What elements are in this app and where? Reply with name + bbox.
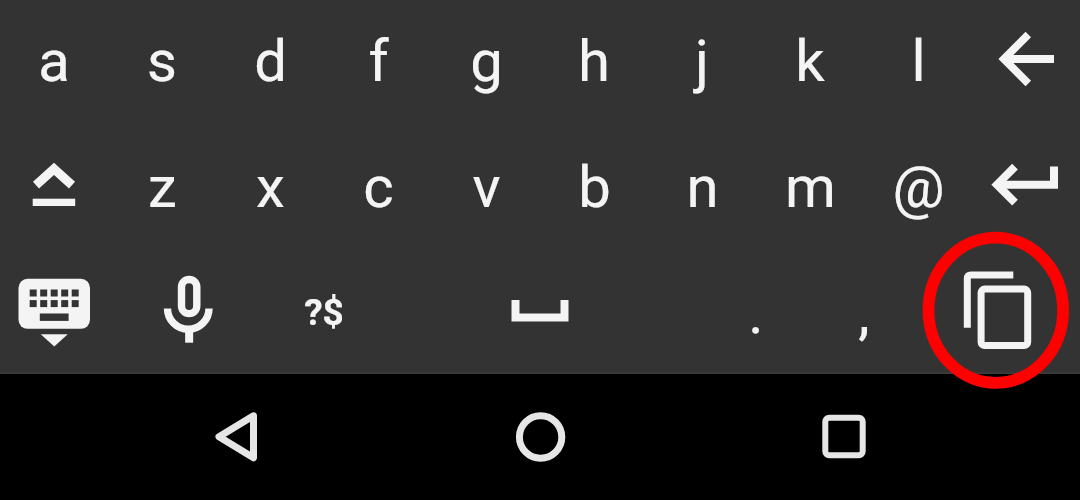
staticText: j [695, 27, 709, 95]
staticText: n [686, 153, 719, 221]
button[interactable]: n [648, 126, 756, 250]
staticText: c [363, 153, 394, 221]
button[interactable]: f [324, 4, 432, 126]
button[interactable]: Voice input [135, 250, 243, 374]
button[interactable]: Space [432, 250, 648, 374]
staticText: h [578, 27, 610, 95]
button[interactable]: Back [180, 374, 292, 500]
button[interactable]: Enter [972, 126, 1080, 250]
button[interactable]: @ [864, 126, 972, 250]
button[interactable]: , [810, 250, 918, 374]
button[interactable]: c [324, 126, 432, 250]
staticText: k [795, 27, 825, 95]
staticText: m [785, 153, 836, 221]
staticText: x [256, 153, 285, 221]
staticText: l [911, 27, 926, 95]
staticText: @ [892, 153, 945, 221]
staticText: ?$ [304, 291, 344, 334]
button[interactable]: g [432, 4, 540, 126]
button[interactable]: Copy [942, 250, 1050, 374]
button[interactable]: Home [485, 374, 597, 500]
staticText: s [147, 27, 177, 95]
button[interactable]: v [432, 126, 540, 250]
button[interactable]: ?$ [270, 250, 378, 374]
button[interactable]: b [540, 126, 648, 250]
staticText: g [470, 27, 503, 95]
button[interactable]: s [108, 4, 216, 126]
staticText: v [472, 153, 501, 221]
staticText: , [858, 279, 870, 347]
button[interactable]: l [864, 4, 972, 126]
staticText: z [148, 153, 177, 221]
staticText: f [368, 27, 389, 95]
button[interactable]: Hide keyboard [0, 250, 108, 374]
button[interactable]: x [216, 126, 324, 250]
staticText: d [254, 27, 287, 95]
staticText: a [38, 27, 70, 95]
staticText: b [578, 153, 611, 221]
button[interactable]: Recents [788, 374, 900, 500]
button[interactable]: h [540, 4, 648, 126]
button[interactable]: . [702, 250, 810, 374]
button[interactable]: Backspace [972, 4, 1080, 126]
button[interactable]: a [0, 4, 108, 126]
button[interactable]: z [108, 126, 216, 250]
button[interactable]: j [648, 4, 756, 126]
button[interactable]: Shift [0, 126, 108, 250]
staticText: . [748, 279, 764, 347]
button[interactable]: k [756, 4, 864, 126]
button[interactable]: d [216, 4, 324, 126]
button[interactable]: m [756, 126, 864, 250]
